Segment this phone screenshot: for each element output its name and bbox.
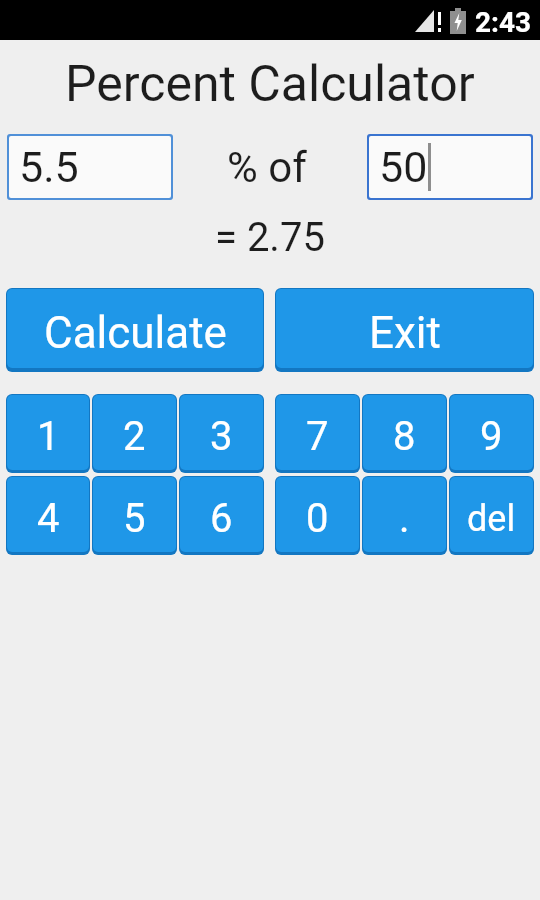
staticText: 9 — [480, 413, 503, 460]
staticText: 1 — [37, 413, 60, 460]
staticText: 2 — [123, 413, 146, 460]
button[interactable]: del — [450, 477, 533, 552]
button[interactable]: 5.5 — [9, 136, 171, 198]
staticText: del — [467, 498, 516, 540]
staticText: 5 — [123, 495, 146, 542]
staticText: 5.5 — [19, 142, 79, 192]
button[interactable]: 5 — [93, 477, 176, 552]
button[interactable]: 3 — [180, 395, 263, 470]
staticText: 4 — [37, 495, 60, 542]
staticText: Percent Calculator — [65, 55, 475, 114]
button[interactable]: 7 — [276, 395, 359, 470]
staticText: 8 — [393, 413, 416, 460]
staticText: Calculate — [44, 307, 227, 359]
staticText: 2:43 — [475, 6, 532, 39]
button[interactable]: 0 — [276, 477, 359, 552]
staticText: . — [399, 495, 410, 542]
button[interactable]: 6 — [180, 477, 263, 552]
staticText: 3 — [210, 413, 233, 460]
button[interactable]: 50 — [369, 136, 531, 198]
staticText: Exit — [369, 307, 441, 359]
button[interactable]: 4 — [7, 477, 89, 552]
staticText: = 2.75 — [215, 214, 325, 261]
staticText: 0 — [306, 495, 329, 542]
staticText: 50 — [379, 142, 428, 192]
staticText: 6 — [210, 495, 233, 542]
button[interactable]: 9 — [450, 395, 533, 470]
button[interactable]: Calculate — [7, 289, 263, 368]
staticText: 7 — [306, 413, 329, 460]
button[interactable]: 8 — [363, 395, 446, 470]
button[interactable]: Exit — [276, 289, 533, 368]
staticText: % of — [227, 143, 307, 192]
button[interactable]: 2 — [93, 395, 176, 470]
button[interactable]: 1 — [7, 395, 89, 470]
button[interactable]: . — [363, 477, 446, 552]
